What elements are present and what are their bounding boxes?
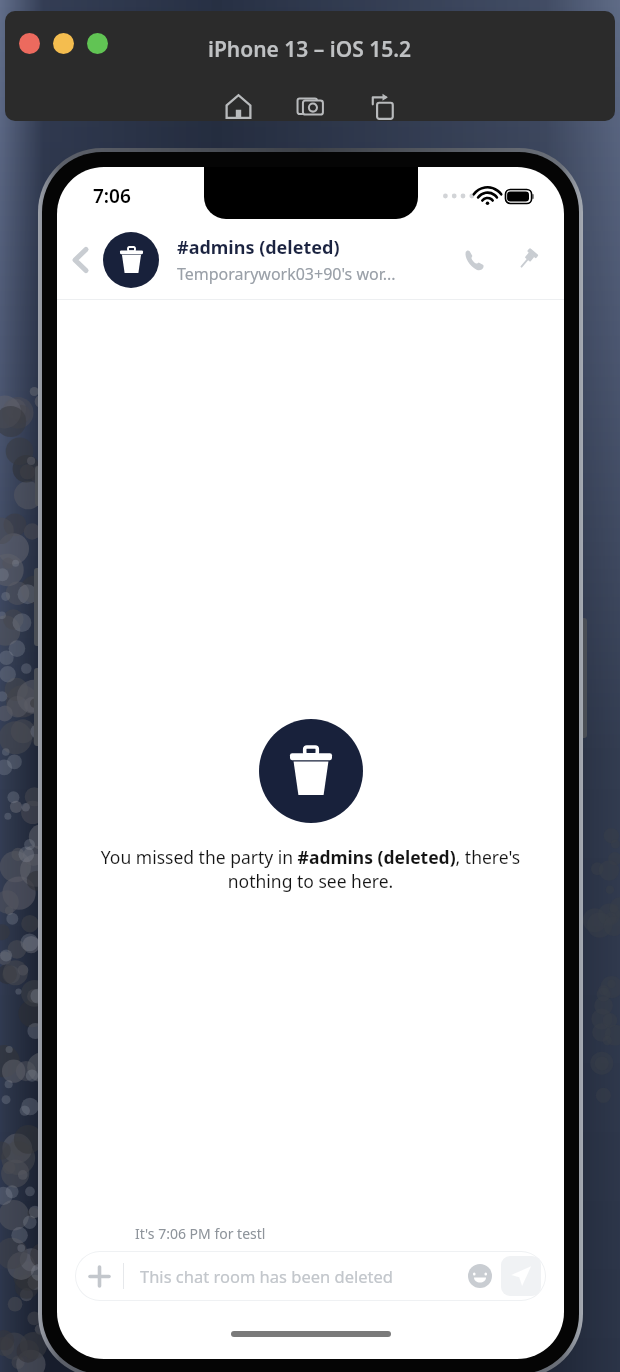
button[interactable] (19, 33, 40, 54)
staticText: You missed the party in #admins (deleted… (71, 845, 550, 893)
button[interactable]: Emoji (461, 1257, 499, 1295)
button[interactable]: Send (501, 1256, 541, 1296)
button[interactable]: Back (57, 227, 103, 293)
button[interactable]: Screenshot (288, 84, 332, 121)
staticText: #admins (deleted) (177, 235, 340, 260)
staticText: This chat room has been deleted (140, 1265, 461, 1287)
button[interactable] (87, 33, 108, 54)
staticText: It's 7:06 PM for testl (135, 1224, 266, 1243)
button[interactable]: Call (450, 236, 498, 284)
staticText: Temporarywork03+90's wor... (177, 263, 396, 285)
button[interactable]: Pinned messages (504, 236, 552, 284)
button[interactable]: Add attachment (75, 1251, 546, 1301)
staticText: 7:06 (93, 183, 131, 209)
button[interactable]: Add attachment (75, 1251, 123, 1301)
button[interactable] (53, 33, 74, 54)
staticText: iPhone 13 – iOS 15.2 (208, 35, 412, 64)
button[interactable]: #admins (deleted) (177, 235, 450, 285)
button[interactable]: Channel avatar (103, 232, 159, 288)
button[interactable]: Home (216, 84, 260, 121)
button[interactable]: Rotate (360, 84, 404, 121)
